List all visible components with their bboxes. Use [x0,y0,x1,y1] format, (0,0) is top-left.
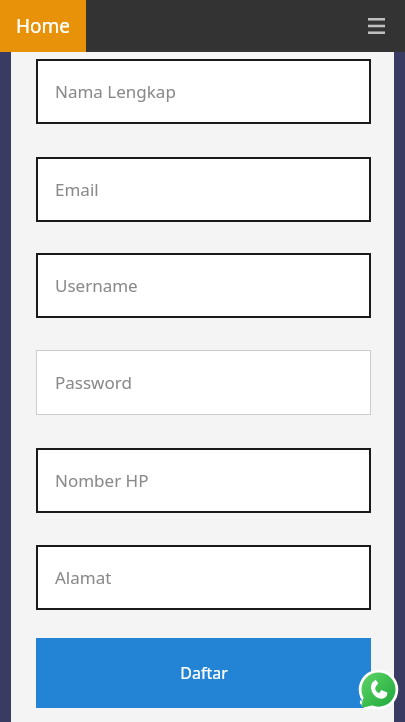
button[interactable]: Daftar [36,638,371,708]
staticText: Username [55,274,138,297]
button[interactable]: Username [36,253,371,318]
button[interactable]: Nama Lengkap [36,59,371,124]
staticText: Email [55,178,99,201]
button[interactable]: Nomber HP [36,448,371,513]
button[interactable]: Home [0,0,86,52]
button[interactable]: Password [36,350,371,415]
button[interactable]: Alamat [36,545,371,610]
staticText: Nomber HP [55,469,149,492]
staticText: Password [55,371,132,394]
staticText: Daftar [180,662,228,684]
button[interactable]: Menu [359,9,393,43]
staticText: Home [16,13,71,39]
staticText: Alamat [55,566,112,589]
staticText: Nama Lengkap [55,80,176,103]
button[interactable]: Chat on WhatsApp [356,668,401,713]
button[interactable]: Email [36,157,371,222]
